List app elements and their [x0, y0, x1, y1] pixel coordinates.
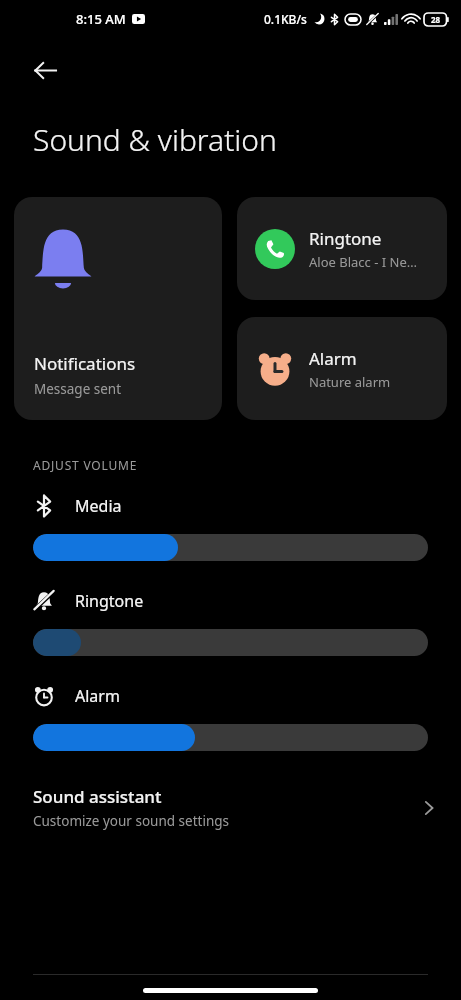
button[interactable]: Alarm volume: [33, 724, 428, 751]
staticText: 28: [431, 14, 441, 25]
button[interactable]: Ringtone volume: [33, 629, 428, 656]
button[interactable]: Back: [22, 47, 68, 93]
staticText: Alarm: [75, 685, 120, 707]
button[interactable]: Notifications: [14, 197, 222, 420]
staticText: Sound & vibration: [33, 119, 277, 160]
staticText: Nature alarm: [309, 373, 391, 391]
staticText: Aloe Blacc - I Ne…: [309, 253, 418, 271]
staticText: ADJUST VOLUME: [33, 457, 138, 473]
staticText: 0.1KB/s: [264, 11, 307, 27]
button[interactable]: Media volume: [33, 534, 428, 561]
button[interactable]: Sound assistant: [0, 781, 461, 840]
staticText: Customize your sound settings: [33, 812, 229, 830]
staticText: 8:15 AM: [76, 10, 126, 28]
staticText: Alarm: [309, 347, 357, 370]
staticText: Ringtone: [75, 590, 144, 612]
staticText: Message sent: [34, 380, 122, 398]
staticText: Sound assistant: [33, 785, 162, 808]
button[interactable]: Alarm: [237, 317, 447, 420]
button[interactable]: Ringtone: [237, 197, 447, 300]
staticText: Ringtone: [309, 227, 382, 250]
staticText: Media: [75, 495, 122, 517]
staticText: Notifications: [34, 352, 136, 375]
